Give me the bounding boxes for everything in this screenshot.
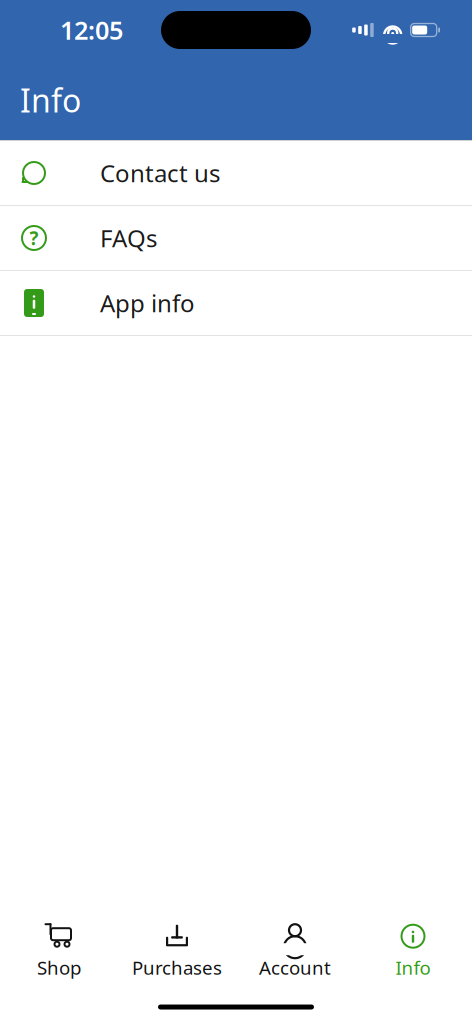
staticText: App info	[100, 287, 195, 319]
staticText: 12:05	[60, 13, 123, 47]
button[interactable]: ?	[0, 206, 472, 271]
button[interactable]: App info	[0, 271, 472, 336]
staticText: Account	[259, 955, 331, 980]
button[interactable]: Info	[354, 916, 472, 986]
button[interactable]: Account	[236, 916, 354, 986]
staticText: Shop	[37, 955, 81, 980]
staticText: FAQs	[100, 222, 157, 254]
staticText: ?	[29, 226, 38, 250]
staticText: Contact us	[100, 157, 220, 189]
button[interactable]: Shop	[0, 916, 118, 986]
staticText: Info	[395, 955, 430, 980]
button[interactable]: Contact us	[0, 141, 472, 206]
staticText: Purchases	[132, 955, 222, 980]
staticText: Info	[20, 79, 81, 121]
button[interactable]: Purchases	[118, 916, 236, 986]
